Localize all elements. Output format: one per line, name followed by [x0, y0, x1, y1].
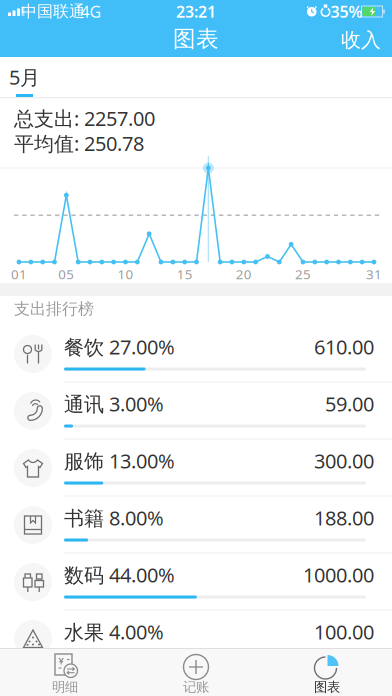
button[interactable]: 记账: [130, 648, 392, 696]
staticText: 4G: [80, 1, 101, 22]
button[interactable]: 通讯 3.00%: [0, 382, 392, 439]
staticText: 平均值: 250.78: [14, 130, 144, 157]
staticText: 31: [366, 265, 382, 283]
staticText: 餐饮 27.00%: [64, 333, 175, 360]
staticText: 收入: [341, 28, 381, 52]
staticText: 23:21: [176, 1, 216, 22]
staticText: 300.00: [314, 447, 374, 474]
staticText: 总支出: 2257.00: [14, 105, 155, 132]
staticText: 记账: [183, 679, 209, 695]
button[interactable]: 收入: [337, 24, 385, 56]
staticText: 15: [177, 265, 193, 283]
button[interactable]: 书籍 8.00%: [0, 496, 392, 553]
staticText: 35%: [330, 1, 362, 22]
button[interactable]: 明细: [0, 648, 392, 696]
staticText: 通讯 3.00%: [64, 390, 164, 417]
staticText: 25: [295, 265, 311, 283]
button[interactable]: 5月: [4, 62, 44, 92]
staticText: 支出排行榜: [14, 299, 94, 319]
staticText: 书籍 8.00%: [64, 504, 164, 531]
staticText: 服饰 13.00%: [64, 447, 175, 474]
staticText: 20: [236, 265, 252, 283]
button[interactable]: 餐饮 27.00%: [0, 325, 392, 382]
button[interactable]: 水果 4.00%: [0, 610, 392, 667]
staticText: 188.00: [314, 504, 374, 531]
staticText: 59.00: [325, 390, 374, 417]
staticText: 数码 44.00%: [64, 561, 175, 588]
staticText: 5月: [9, 64, 40, 90]
button[interactable]: 图表: [261, 648, 392, 696]
staticText: 05: [58, 265, 74, 283]
staticText: 图表: [173, 25, 219, 53]
button[interactable]: 服饰 13.00%: [0, 439, 392, 496]
staticText: 610.00: [314, 333, 374, 360]
staticText: 1000.00: [303, 561, 374, 588]
staticText: 10: [117, 265, 133, 283]
staticText: 明细: [52, 679, 78, 695]
staticText: 水果 4.00%: [64, 618, 164, 645]
staticText: 100.00: [314, 618, 374, 645]
staticText: 01: [11, 265, 27, 283]
staticText: 图表: [314, 679, 340, 695]
button[interactable]: 数码 44.00%: [0, 553, 392, 610]
staticText: 中国联通: [21, 2, 85, 21]
